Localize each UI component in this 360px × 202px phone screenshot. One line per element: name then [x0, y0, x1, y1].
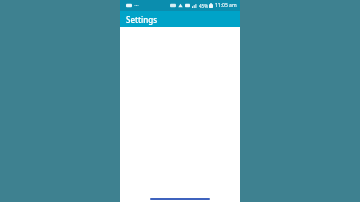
- staticText: Settings: [126, 14, 158, 25]
- button[interactable]: Home gesture indicator: [150, 198, 210, 200]
- staticText: 11:05 am: [215, 2, 237, 9]
- button[interactable]: Settings: [120, 11, 240, 27]
- staticText: 45%: [199, 3, 208, 9]
